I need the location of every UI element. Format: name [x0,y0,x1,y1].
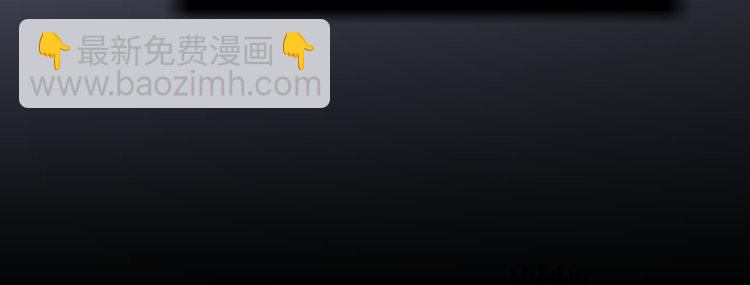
staticText: 最新免费漫画 [76,24,274,72]
staticText: 👇 [275,29,320,71]
button[interactable]: 👇 [19,19,330,108]
staticText: www.baozimh.com [29,62,323,104]
staticText: 👇 [31,29,76,71]
